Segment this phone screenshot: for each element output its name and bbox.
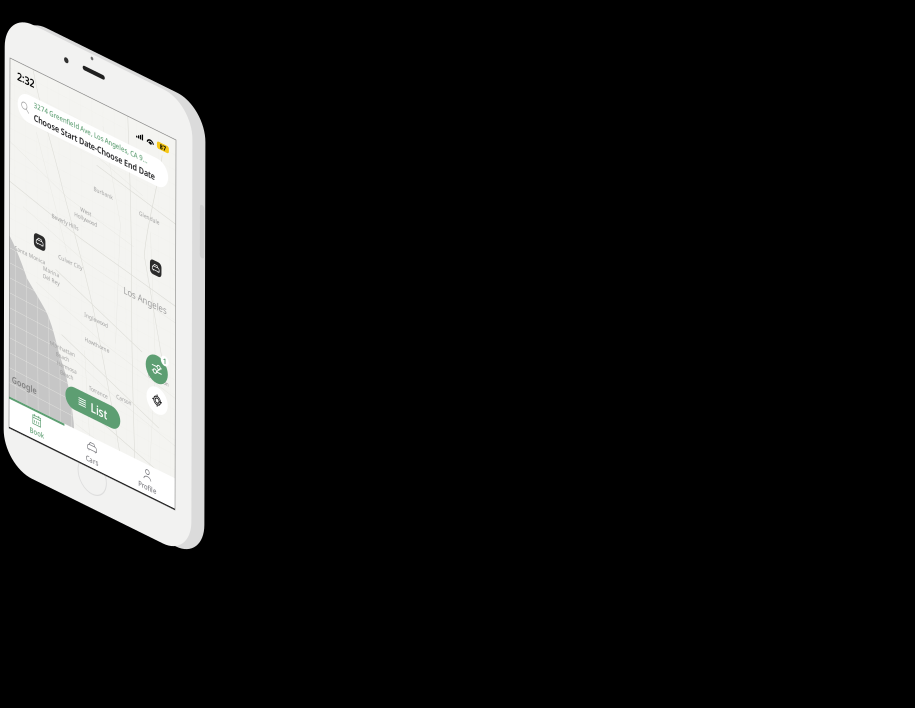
staticText: Choose Start Date-Choose End Date xyxy=(54,75,327,96)
staticText: West xyxy=(159,202,184,216)
staticText: Santa Monica xyxy=(11,330,80,344)
staticText: Beverly Hills xyxy=(94,239,155,253)
button[interactable]: List xyxy=(127,536,251,576)
staticText: Beach xyxy=(114,513,145,527)
staticText: Culver City xyxy=(110,307,164,321)
staticText: 2:32 xyxy=(16,12,55,38)
staticText: Burbank xyxy=(189,153,233,167)
staticText: Hollywood xyxy=(146,216,198,230)
staticText: List xyxy=(184,541,222,571)
staticText: Beach xyxy=(104,484,135,498)
staticText: Inglewood xyxy=(169,388,223,402)
button[interactable]: 3274 Greenfield Ave, Los Angeles, CA 9… xyxy=(17,50,357,100)
staticText: Del Rey xyxy=(75,355,113,369)
staticText: 3274 Greenfield Ave, Los Angeles, CA 9… xyxy=(54,54,311,72)
staticText: Torrance xyxy=(179,516,222,530)
staticText: Marina xyxy=(76,341,112,355)
staticText: Hawthorne xyxy=(170,432,226,446)
staticText: Manhattan xyxy=(91,470,148,484)
